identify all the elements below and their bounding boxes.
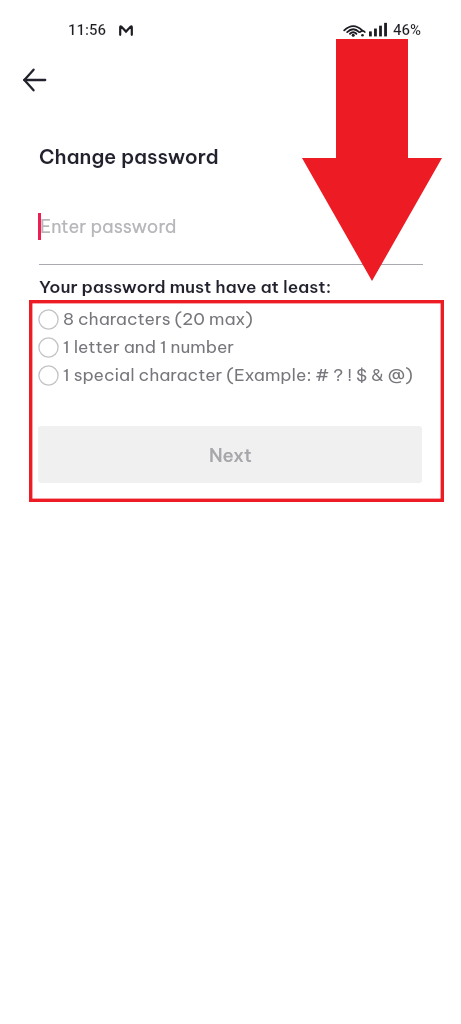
button[interactable]: Enter password <box>38 210 423 266</box>
button[interactable]: 1 special character (Example: # ? ! $ & … <box>38 361 413 389</box>
staticText: 1 special character (Example: # ? ! $ & … <box>63 364 413 386</box>
staticText: Your password must have at least: <box>39 276 332 298</box>
staticText: 46% <box>393 21 422 39</box>
button[interactable]: 1 letter and 1 number <box>38 333 235 361</box>
staticText: Next <box>209 443 252 466</box>
staticText: 1 letter and 1 number <box>63 336 235 358</box>
button[interactable]: 8 characters (20 max) <box>38 305 253 333</box>
button[interactable]: Next <box>38 426 422 483</box>
staticText: 11:56 <box>68 21 107 39</box>
staticText: Change password <box>39 144 219 169</box>
staticText: 8 characters (20 max) <box>63 308 253 330</box>
button[interactable]: Navigate back <box>17 63 51 97</box>
staticText: Enter password <box>40 215 177 238</box>
